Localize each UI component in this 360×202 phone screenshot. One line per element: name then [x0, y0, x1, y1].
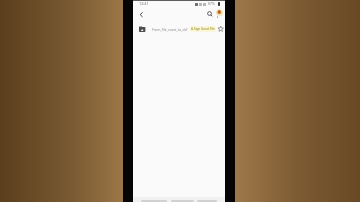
staticText: A-Sign Good File — [191, 27, 215, 31]
staticText: 87% — [208, 1, 215, 6]
button[interactable] — [217, 25, 225, 33]
button[interactable] — [137, 10, 146, 19]
button[interactable]: A-Sign Good File — [190, 26, 216, 32]
staticText: > — [186, 26, 188, 31]
staticText: From_file_roast_to_do — [152, 27, 187, 32]
button[interactable] — [216, 9, 223, 16]
button[interactable] — [206, 10, 214, 18]
staticText: 12:41 — [139, 1, 149, 6]
button[interactable]: From_file_roast_to_do — [137, 23, 192, 34]
